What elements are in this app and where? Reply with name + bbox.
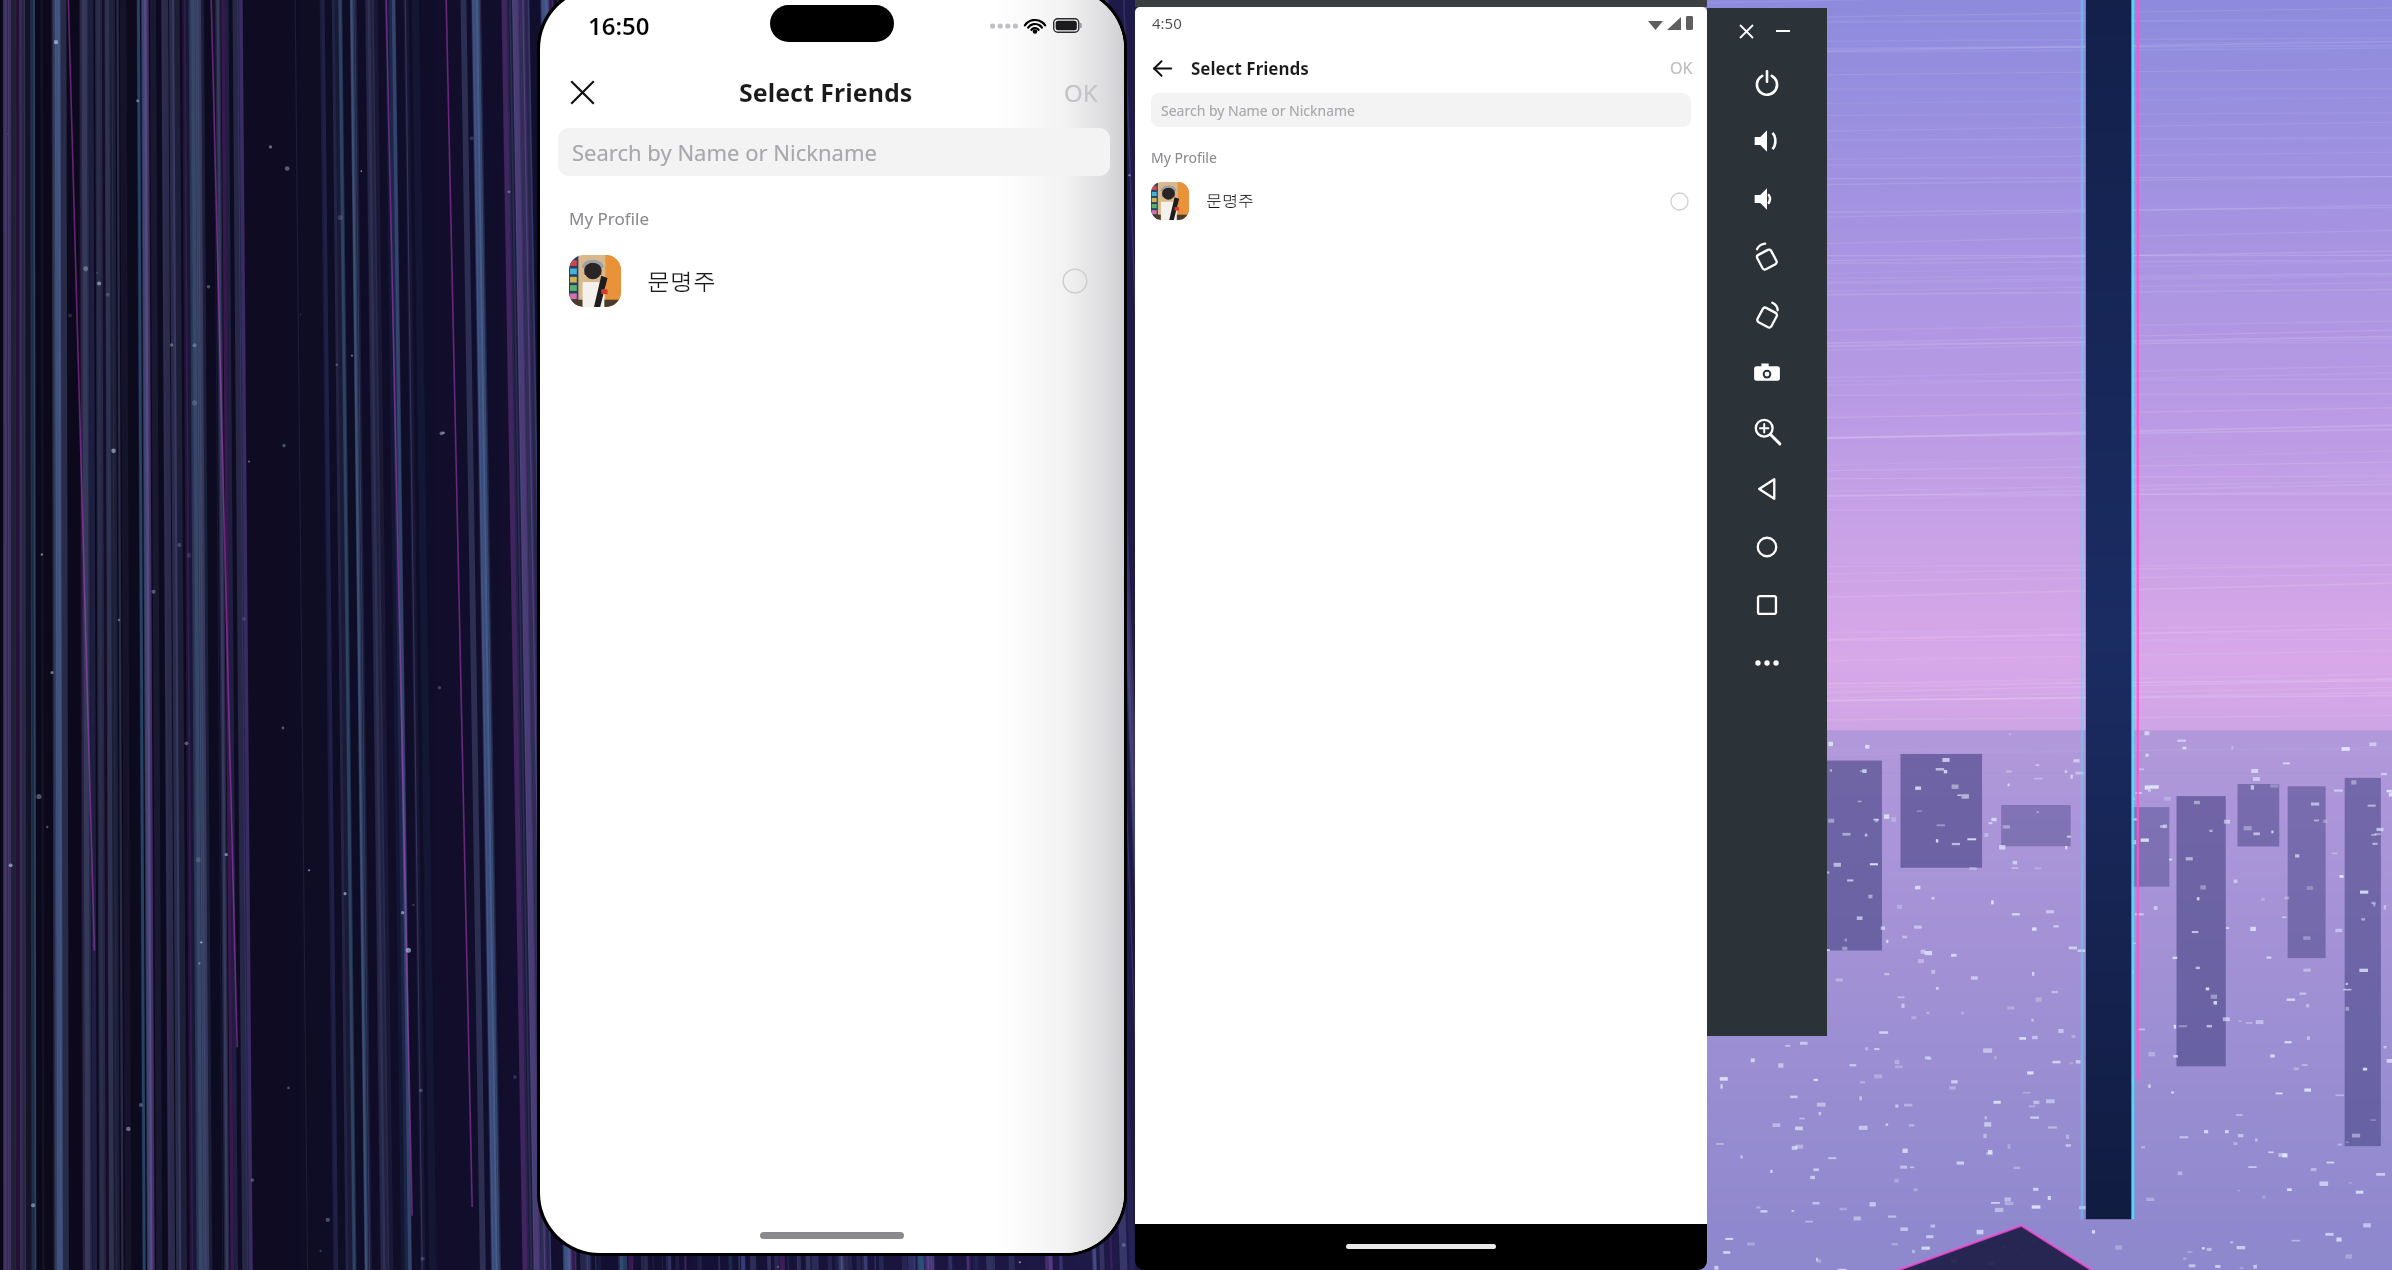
- staticText: Select Friends: [739, 75, 913, 109]
- button[interactable]: Zoom: [1707, 402, 1827, 460]
- staticText: My Profile: [1151, 148, 1217, 167]
- staticText: OK: [1670, 57, 1693, 79]
- button[interactable]: OK: [1058, 70, 1104, 115]
- staticText: 16:50: [588, 9, 650, 42]
- button[interactable]: Volume up: [1707, 112, 1827, 170]
- button[interactable]: 문명주: [1135, 175, 1707, 227]
- button[interactable]: Power: [1707, 54, 1827, 112]
- button[interactable]: Rotate left: [1707, 228, 1827, 286]
- button[interactable]: 문명주: [540, 244, 1124, 318]
- button[interactable]: More: [1707, 634, 1827, 692]
- staticText: 4:50: [1152, 13, 1182, 33]
- button[interactable]: Back: [1145, 51, 1179, 85]
- staticText: Search by Name or Nickname: [572, 137, 877, 167]
- button[interactable]: Volume down: [1707, 170, 1827, 228]
- button[interactable]: Search by Name or Nickname: [1151, 93, 1691, 127]
- button[interactable]: Close: [560, 70, 604, 114]
- button[interactable]: Overview: [1707, 576, 1827, 634]
- staticText: 문명주: [647, 267, 716, 296]
- button[interactable]: OK: [1666, 53, 1697, 83]
- button[interactable]: Close: [1733, 18, 1759, 44]
- staticText: Select Friends: [1191, 57, 1309, 80]
- button[interactable]: Take screenshot: [1707, 344, 1827, 402]
- button[interactable]: Home: [1707, 518, 1827, 576]
- staticText: My Profile: [569, 207, 649, 230]
- staticText: OK: [1064, 76, 1098, 109]
- button[interactable]: Back: [1707, 460, 1827, 518]
- button[interactable]: Minimize: [1770, 18, 1796, 44]
- staticText: 문명주: [1206, 191, 1254, 211]
- staticText: Search by Name or Nickname: [1161, 101, 1356, 120]
- button[interactable]: Search by Name or Nickname: [558, 128, 1110, 176]
- button[interactable]: Rotate right: [1707, 286, 1827, 344]
